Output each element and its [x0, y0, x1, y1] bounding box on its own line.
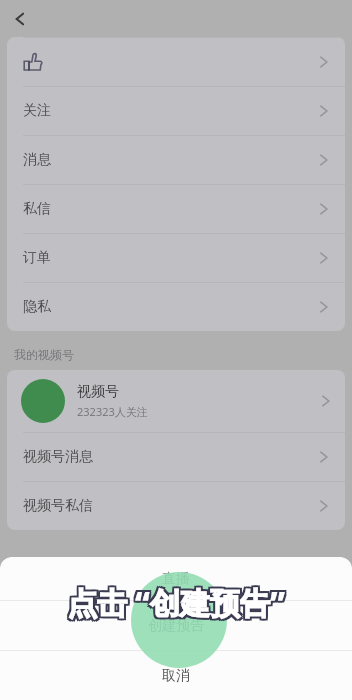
staticText: 关注	[23, 102, 51, 120]
button[interactable]: 私信	[7, 185, 345, 233]
staticText: 私信	[23, 200, 51, 218]
staticText: 点击 “创建预告”	[69, 580, 287, 621]
staticText: 我的视频号	[14, 347, 74, 362]
staticText: 点击 “创建预告”	[65, 582, 283, 623]
staticText: 直播	[162, 570, 190, 588]
staticText: 取消	[162, 667, 190, 685]
staticText: 点击 “创建预告”	[67, 582, 285, 623]
button[interactable]: 直播	[0, 557, 352, 600]
staticText: 点击 “创建预告”	[65, 580, 283, 621]
button[interactable]: 视频号消息	[7, 433, 345, 481]
staticText: 订单	[23, 249, 51, 267]
button[interactable]: 消息	[7, 136, 345, 184]
staticText: 隐私	[23, 298, 51, 316]
staticText: 视频号消息	[23, 448, 93, 466]
button[interactable]: 取消	[0, 651, 352, 700]
staticText: 点击 “创建预告”	[69, 584, 287, 625]
button[interactable]: 关注	[7, 87, 345, 135]
staticText: 点击 “创建预告”	[67, 584, 285, 625]
staticText: 创建预告	[148, 617, 204, 635]
staticText: 点击 “创建预告”	[65, 584, 283, 625]
button[interactable]: Back	[4, 3, 36, 35]
staticText: 点击 “创建预告”	[67, 580, 285, 621]
button[interactable]: 视频号私信	[7, 482, 345, 530]
button[interactable]: 创建预告	[0, 601, 352, 650]
staticText: 视频号	[77, 383, 119, 401]
button[interactable]: 订单	[7, 234, 345, 282]
button[interactable]: 隐私	[7, 283, 345, 331]
staticText: 消息	[23, 151, 51, 169]
button[interactable]: 视频号	[7, 370, 345, 432]
staticText: 232323人关注	[77, 404, 148, 419]
staticText: 点击 “创建预告”	[69, 582, 287, 623]
staticText: 视频号私信	[23, 497, 93, 515]
button[interactable]	[7, 38, 345, 86]
